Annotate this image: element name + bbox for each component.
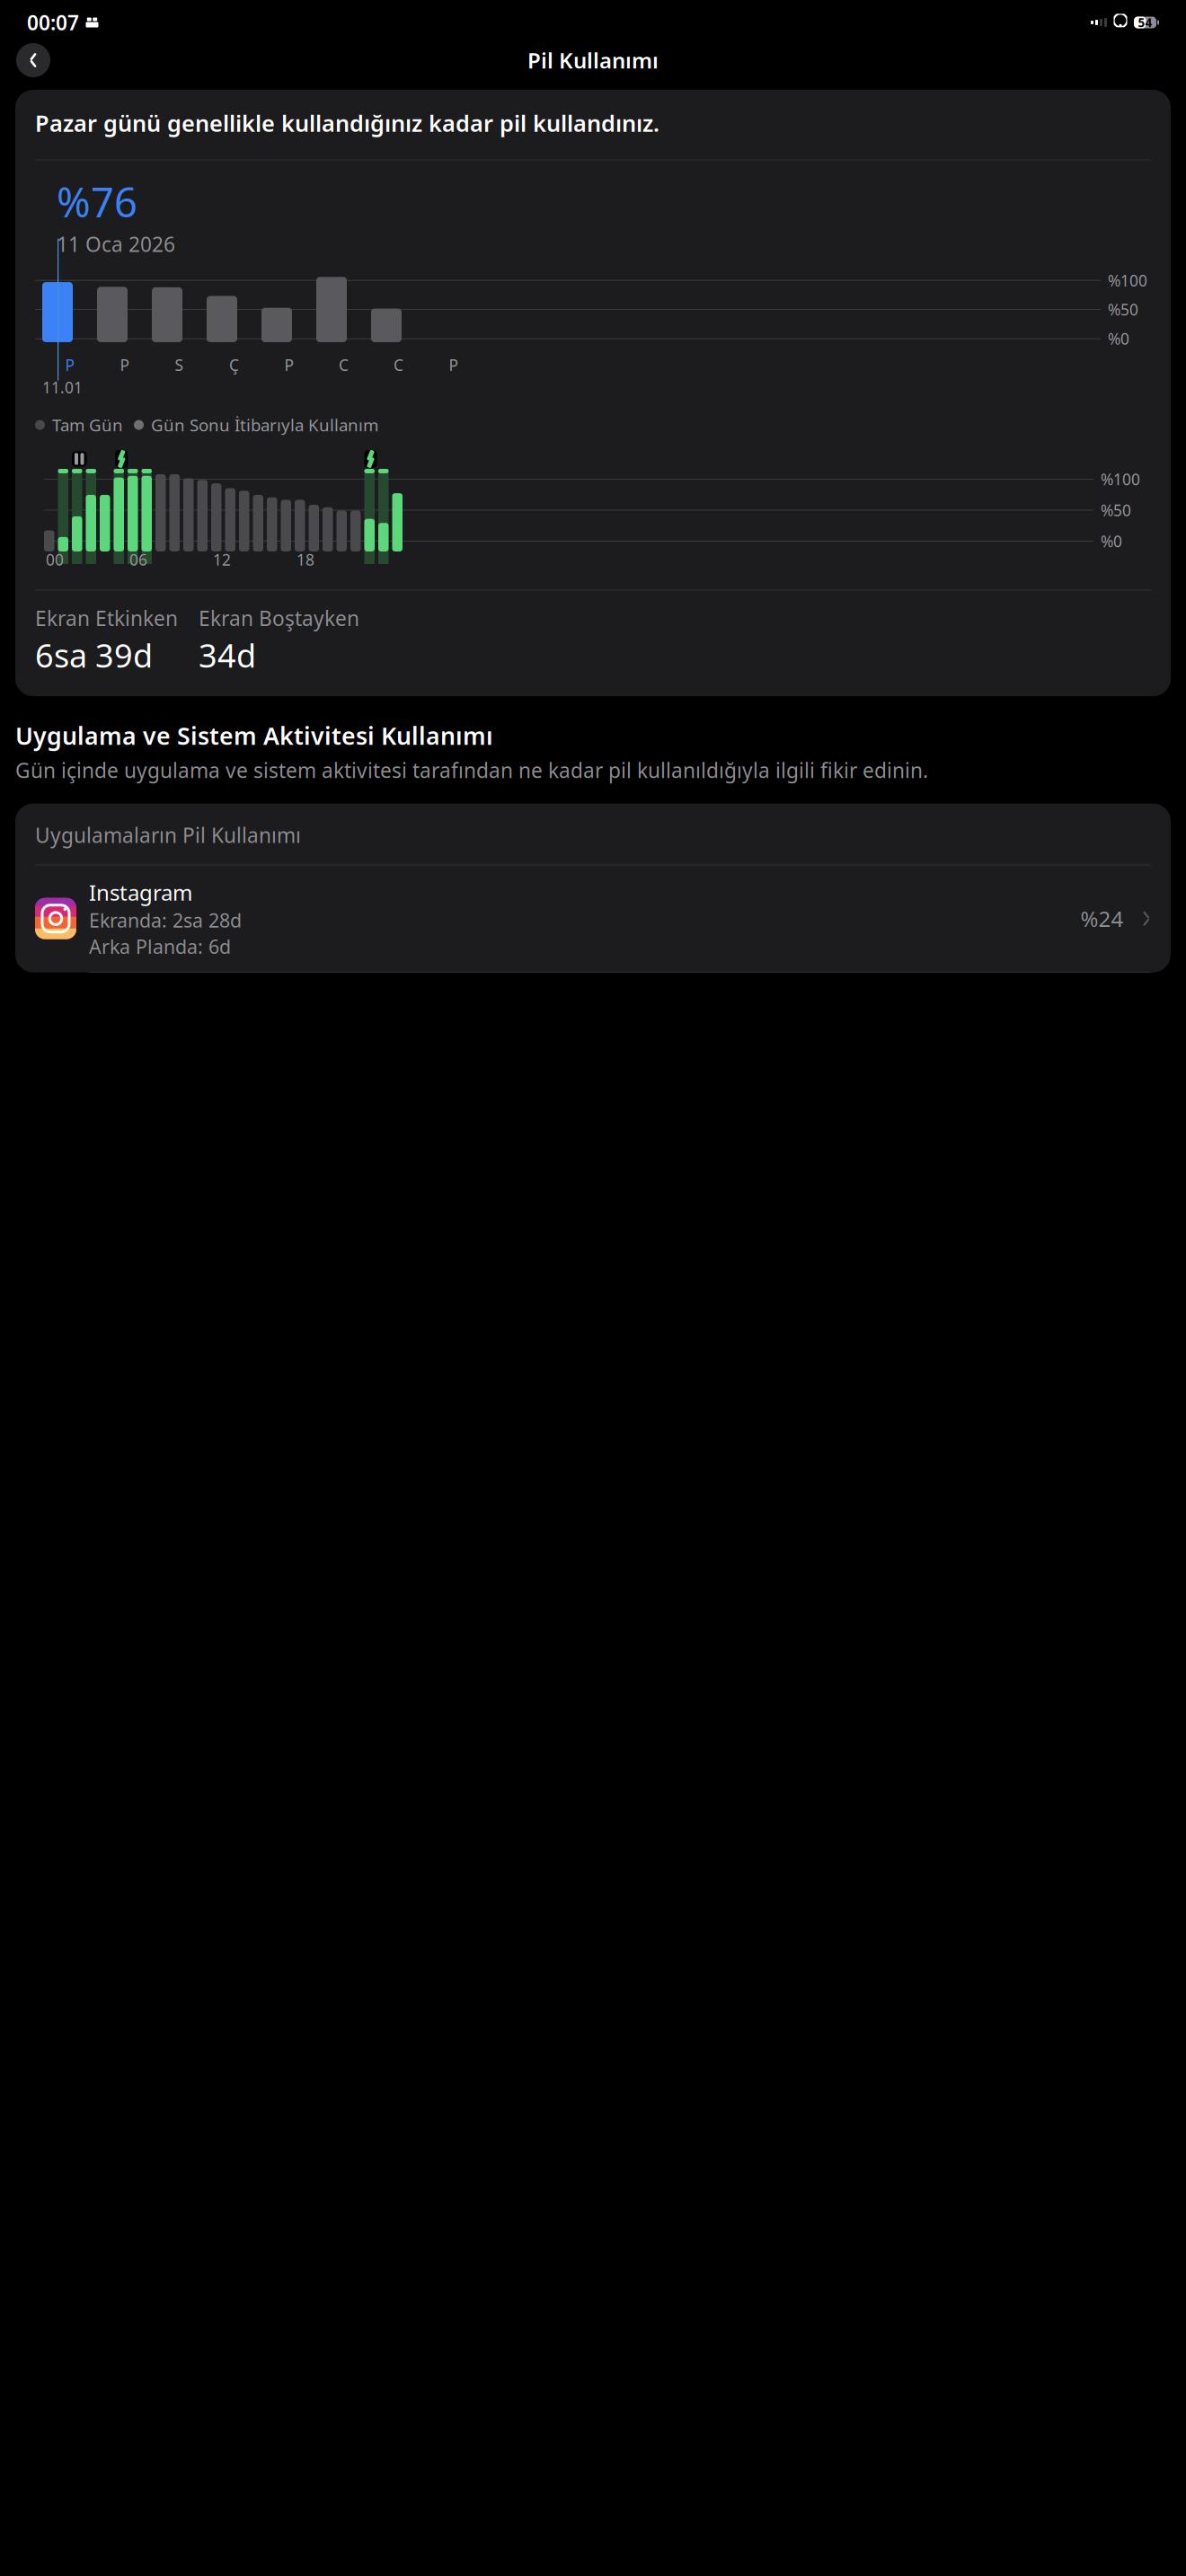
- staticText: %100: [1101, 469, 1140, 490]
- staticText: Ekran Boştayken: [199, 605, 359, 632]
- staticText: Pil Kullanımı: [527, 46, 659, 75]
- staticText: Instagram: [89, 878, 192, 907]
- staticText: P: [65, 354, 74, 375]
- staticText: 12: [213, 549, 231, 570]
- button[interactable]: Geri: [16, 43, 50, 77]
- staticText: 6sa 39d: [35, 633, 153, 676]
- staticText: 18: [296, 549, 314, 570]
- staticText: Tam Gün: [52, 414, 123, 436]
- staticText: Arka Planda: 6d: [89, 934, 231, 959]
- staticText: %76: [57, 175, 137, 229]
- staticText: %0: [1101, 531, 1122, 551]
- staticText: Ekranda: 2sa 28d: [89, 907, 242, 933]
- staticText: Gün içinde uygulama ve sistem aktivitesi…: [15, 757, 928, 784]
- staticText: %100: [1108, 270, 1147, 291]
- staticText: %24: [1080, 904, 1124, 933]
- staticText: 06: [129, 549, 147, 570]
- staticText: %0: [1108, 328, 1129, 349]
- staticText: Ç: [229, 354, 239, 375]
- staticText: P: [284, 354, 293, 375]
- staticText: C: [339, 354, 349, 375]
- staticText: P: [449, 354, 458, 375]
- staticText: P: [120, 354, 129, 375]
- staticText: 11.01: [42, 377, 83, 398]
- staticText: 00: [46, 549, 64, 570]
- staticText: S: [175, 354, 184, 375]
- staticText: 11 Oca 2026: [57, 230, 175, 257]
- staticText: Pazar günü genellikle kullandığınız kada…: [35, 108, 659, 138]
- staticText: Ekran Etkinken: [35, 605, 178, 632]
- staticText: Gün Sonu İtibarıyla Kullanım: [151, 414, 378, 436]
- staticText: Uygulamaların Pil Kullanımı: [35, 821, 301, 849]
- staticText: C: [394, 354, 403, 375]
- staticText: 34d: [199, 633, 256, 676]
- staticText: 00:07: [27, 9, 79, 36]
- button[interactable]: Instagram: [15, 865, 1171, 972]
- staticText: 54: [1138, 14, 1152, 30]
- staticText: %50: [1108, 299, 1138, 320]
- staticText: Uygulama ve Sistem Aktivitesi Kullanımı: [15, 720, 493, 751]
- staticText: %50: [1101, 500, 1131, 520]
